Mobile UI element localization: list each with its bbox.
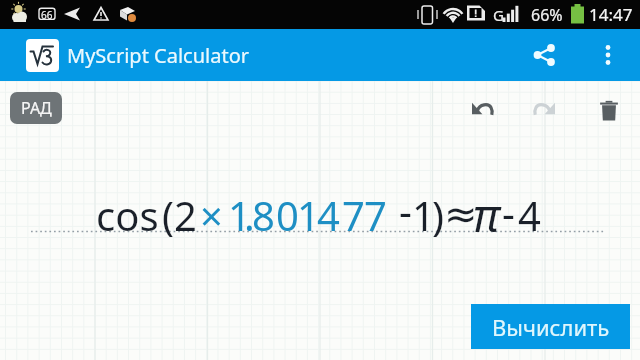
staticText: 66 [41,8,53,22]
staticText: 1 [412,188,435,242]
button[interactable]: Undo [463,90,503,130]
staticText: 7 [364,188,387,242]
button[interactable]: Delete [589,90,629,130]
staticText: 1 [228,188,251,242]
staticText: 14:47 [589,3,633,26]
staticText: (2 [162,188,197,242]
staticText: - [399,183,412,237]
button[interactable]: Share [522,32,568,78]
staticText: ≈ [444,191,478,238]
staticText: РАД [21,97,52,119]
staticText: Вычислить [492,312,610,342]
button[interactable]: Redo [524,90,564,130]
staticText: 66% [531,4,563,26]
button[interactable]: More options [585,32,631,78]
button[interactable]: РАД [10,92,62,124]
staticText: 8 [252,188,275,242]
button[interactable]: Вычислить [471,304,630,349]
button[interactable] [26,39,59,72]
staticText: 1 [297,188,320,242]
staticText: 4 [317,188,340,242]
staticText: 0 [276,188,299,242]
staticText: 7 [342,188,365,242]
staticText: 4 [518,188,541,242]
staticText: cos [96,188,159,242]
staticText: × [200,188,223,242]
staticText: MyScript Calculator [67,42,249,69]
staticText: π [473,184,500,245]
staticText: G [493,5,504,25]
staticText: ) [432,188,444,242]
staticText: - [502,185,515,239]
staticText: . [244,188,255,242]
